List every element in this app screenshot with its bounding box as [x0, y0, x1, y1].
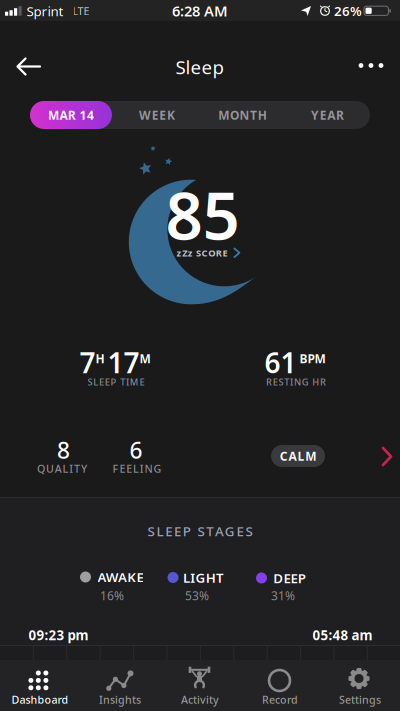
staticText: 6:28 AM — [172, 1, 228, 21]
button[interactable] — [381, 446, 392, 466]
staticText: FEELING — [113, 461, 161, 476]
staticText: 26% — [334, 2, 362, 20]
staticText: LTE — [72, 4, 89, 18]
staticText: Insights — [99, 692, 141, 707]
staticText: SLEEP STAGES — [148, 522, 252, 540]
staticText: MONTH — [218, 107, 267, 123]
staticText: Activity — [181, 692, 219, 707]
staticText: Record — [262, 692, 298, 707]
button[interactable] — [350, 54, 392, 76]
button[interactable]: Dashboard — [0, 660, 80, 711]
button[interactable]: WEEK — [117, 101, 197, 129]
staticText: RESTING HR — [266, 376, 326, 388]
button[interactable]: MONTH — [202, 101, 282, 129]
button[interactable] — [7, 44, 51, 88]
staticText: DEEP — [273, 569, 306, 587]
button[interactable]: Insights — [80, 660, 160, 711]
staticText: MAR 14 — [48, 107, 94, 123]
button[interactable]: zZz SCORE — [164, 246, 254, 260]
staticText: LIGHT — [183, 569, 224, 586]
button[interactable]: CALM — [271, 445, 325, 467]
staticText: CALM — [280, 448, 316, 464]
staticText: 6 — [129, 435, 142, 465]
staticText: 31% — [271, 587, 295, 603]
staticText: QUALITY — [37, 461, 87, 476]
staticText: 8 — [57, 435, 70, 465]
staticText: 16% — [100, 587, 124, 603]
staticText: YEAR — [311, 107, 344, 123]
staticText: WEEK — [139, 107, 175, 123]
staticText: 09:23 pm — [28, 626, 88, 644]
staticText: Settings — [339, 692, 381, 707]
staticText: SLEEP TIME — [87, 376, 145, 388]
staticText: Sprint — [26, 2, 63, 20]
button[interactable]: YEAR — [287, 101, 367, 129]
staticText: Dashboard — [11, 692, 68, 707]
staticText: Sleep — [175, 55, 223, 79]
staticText: 53% — [185, 587, 209, 603]
staticText: 7H 17M — [79, 344, 150, 381]
staticText: 61 BPM — [264, 344, 325, 381]
button[interactable]: MAR 14 — [30, 101, 112, 129]
staticText: 05:48 am — [312, 626, 372, 644]
staticText: AWAKE — [98, 568, 143, 586]
button[interactable]: Settings — [320, 660, 400, 711]
button[interactable]: Record — [240, 660, 320, 711]
button[interactable]: Activity — [160, 660, 240, 711]
staticText: zZz SCORE — [177, 247, 227, 259]
staticText: 85 — [165, 171, 239, 258]
